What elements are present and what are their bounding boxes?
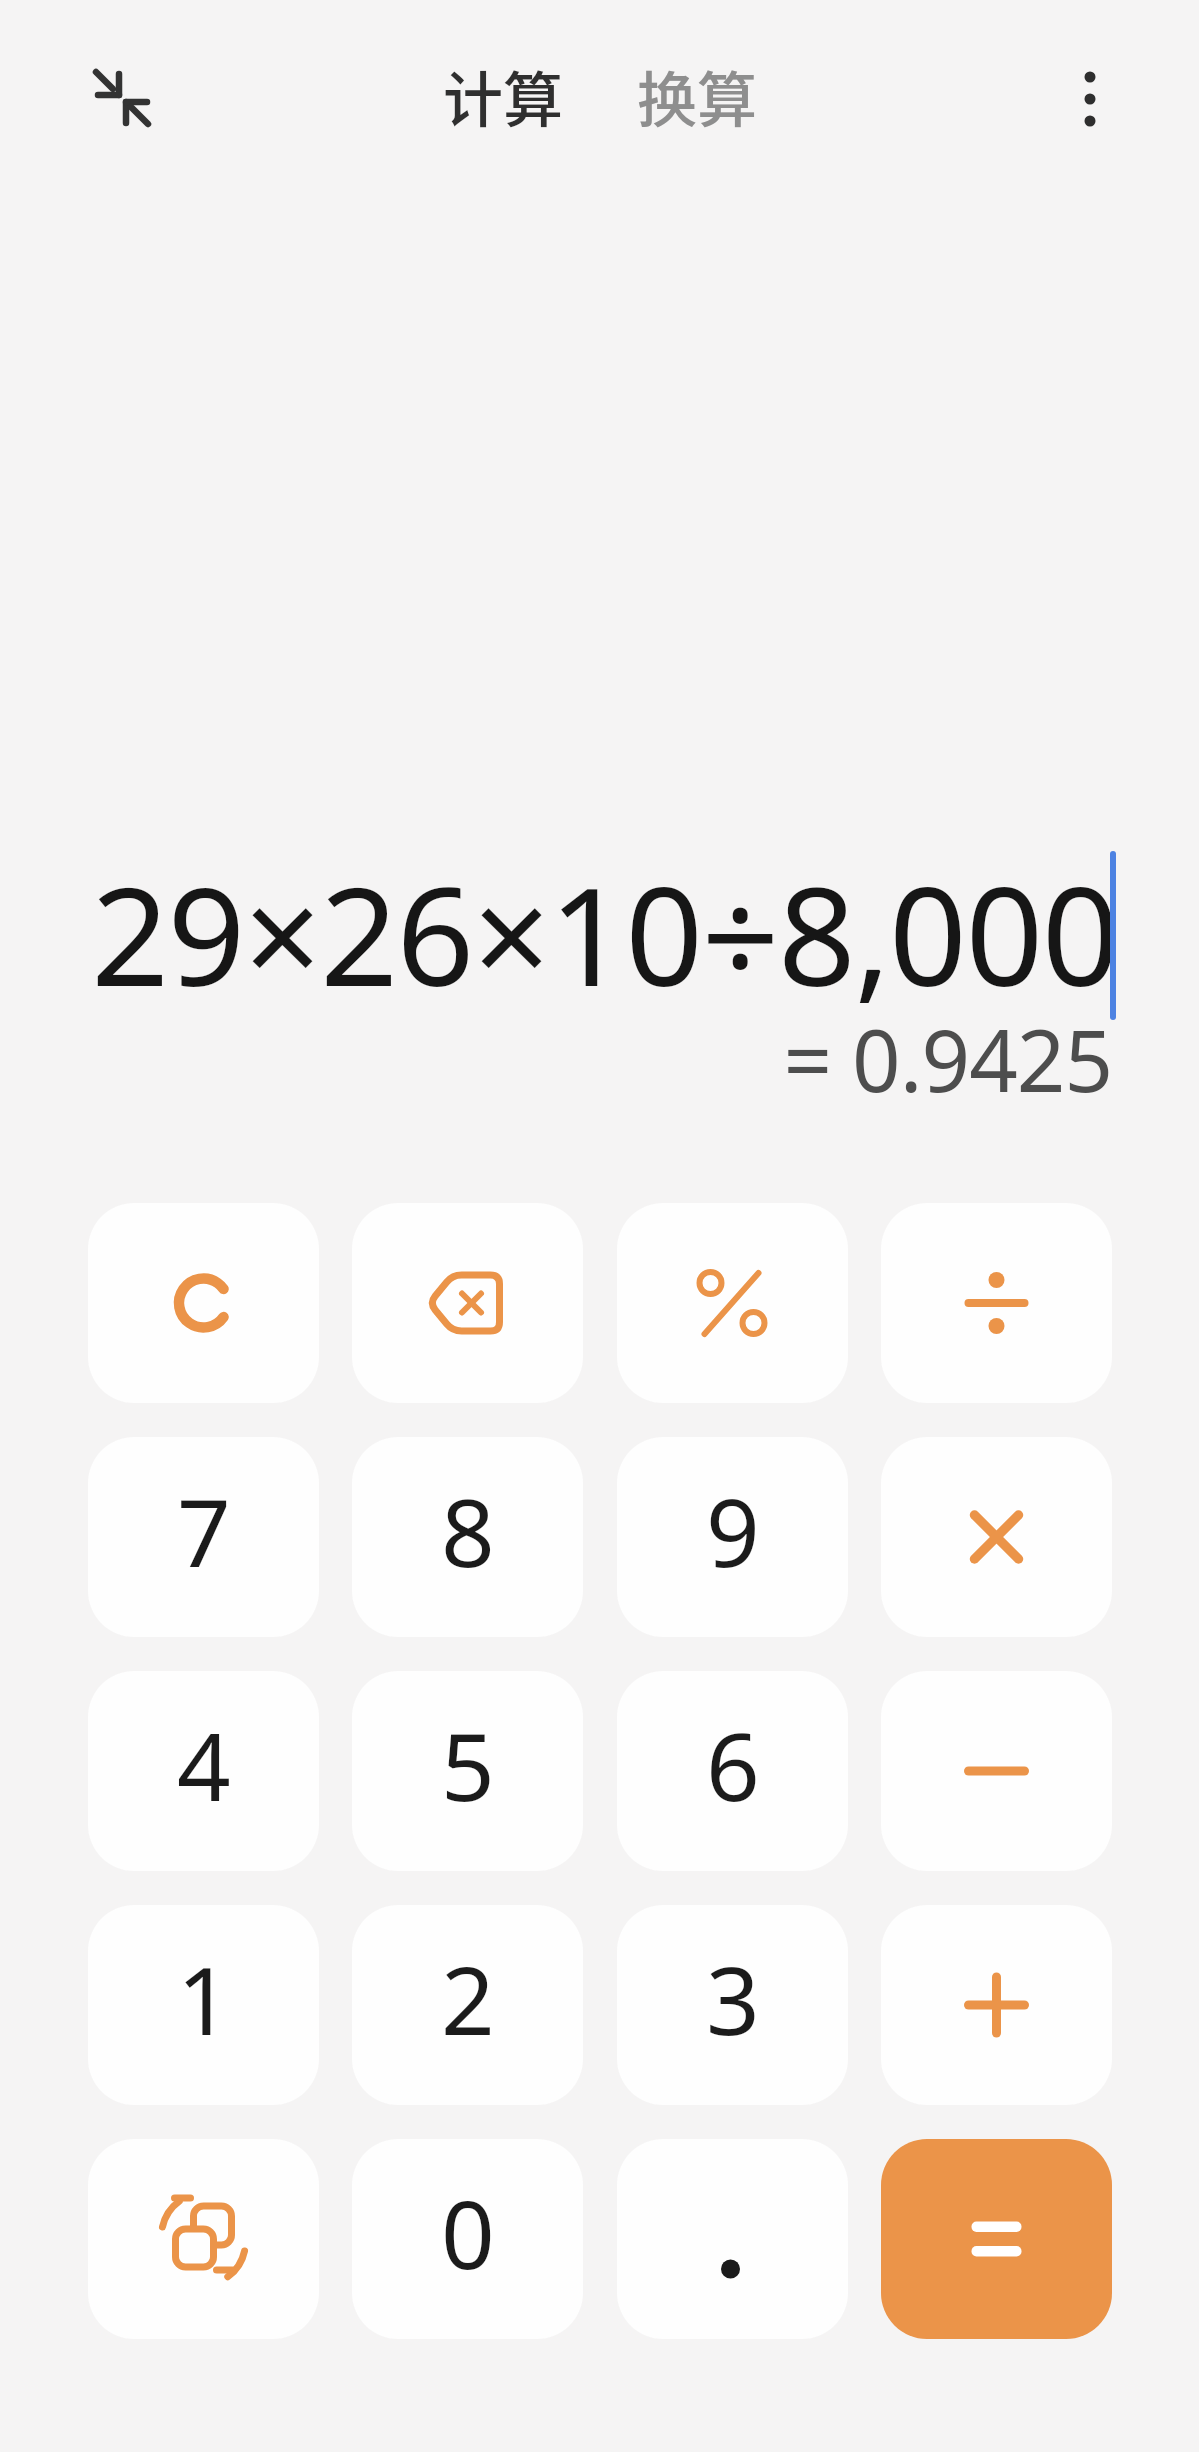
staticText: 4 xyxy=(177,1701,231,1829)
staticText: 1 xyxy=(177,1935,231,2063)
staticText: 7 xyxy=(177,1467,231,1595)
button[interactable]: 3 xyxy=(617,1905,848,2105)
staticText: 2 xyxy=(441,1935,495,2063)
button[interactable]: 4 xyxy=(88,1671,319,1871)
staticText: 3 xyxy=(706,1935,760,2063)
staticText: 计算 xyxy=(443,52,563,139)
button[interactable] xyxy=(88,1203,319,1403)
button[interactable] xyxy=(881,1905,1112,2105)
staticText: 6 xyxy=(706,1701,760,1829)
button[interactable]: 7 xyxy=(88,1437,319,1637)
button[interactable] xyxy=(1056,64,1124,134)
button[interactable] xyxy=(881,1437,1112,1637)
staticText: 5 xyxy=(441,1701,495,1829)
button[interactable] xyxy=(88,2139,319,2339)
button[interactable]: 5 xyxy=(352,1671,583,1871)
button[interactable] xyxy=(617,1203,848,1403)
button[interactable]: 换算 xyxy=(637,52,757,139)
button[interactable] xyxy=(617,2139,848,2339)
button[interactable] xyxy=(352,1203,583,1403)
button[interactable] xyxy=(80,56,164,140)
button[interactable]: 1 xyxy=(88,1905,319,2105)
staticText: 0 xyxy=(441,2169,495,2297)
button[interactable]: 6 xyxy=(617,1671,848,1871)
button[interactable] xyxy=(881,1671,1112,1871)
button[interactable]: 2 xyxy=(352,1905,583,2105)
button[interactable]: 8 xyxy=(352,1437,583,1637)
button[interactable]: 0 xyxy=(352,2139,583,2339)
staticText: 29×26×10÷8,000 xyxy=(0,841,1118,1026)
staticText: 9 xyxy=(706,1467,760,1595)
staticText: = 0.9425 xyxy=(0,1001,1112,1117)
button[interactable]: 9 xyxy=(617,1437,848,1637)
button[interactable]: 计算 xyxy=(443,52,563,139)
button[interactable] xyxy=(881,1203,1112,1403)
staticText: 8 xyxy=(441,1467,495,1595)
staticText: 换算 xyxy=(637,52,757,139)
button[interactable] xyxy=(881,2139,1112,2339)
